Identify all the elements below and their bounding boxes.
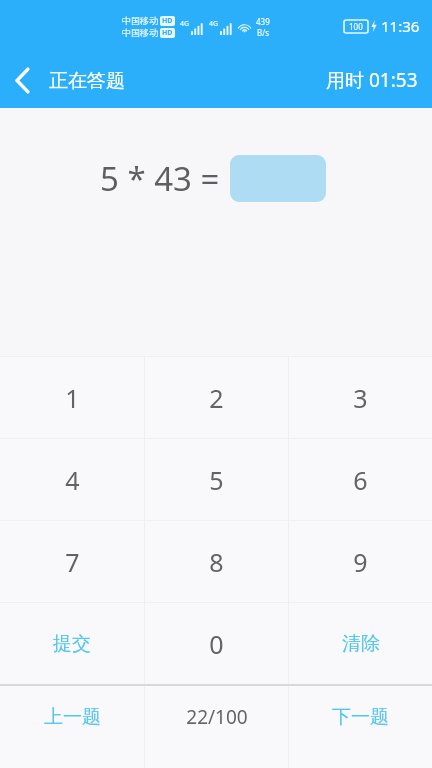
- staticText: 8: [209, 545, 224, 579]
- button[interactable]: 1: [0, 357, 144, 438]
- staticText: 22/100: [186, 704, 248, 730]
- button[interactable]: 下一题: [289, 686, 432, 768]
- button[interactable]: 清除: [289, 603, 432, 684]
- button[interactable]: 3: [289, 357, 432, 438]
- staticText: 提交: [53, 632, 91, 656]
- other: Back: [14, 67, 31, 94]
- staticText: 6: [353, 463, 368, 497]
- staticText: 清除: [342, 632, 380, 656]
- staticText: HD: [162, 16, 173, 26]
- staticText: 4G: [180, 19, 190, 29]
- button[interactable]: 4: [0, 439, 144, 520]
- staticText: B/s: [257, 27, 270, 38]
- button[interactable]: 6: [289, 439, 432, 520]
- button[interactable]: 2: [145, 357, 288, 438]
- button[interactable]: 5: [145, 439, 288, 520]
- staticText: 4G: [209, 19, 219, 29]
- staticText: 11:36: [381, 16, 420, 36]
- button[interactable]: 提交: [0, 603, 144, 684]
- staticText: 9: [353, 545, 368, 579]
- staticText: 用时 01:53: [326, 67, 418, 93]
- staticText: 上一题: [44, 705, 101, 729]
- button[interactable]: 9: [289, 521, 432, 602]
- staticText: 4: [65, 463, 80, 497]
- staticText: 100: [349, 21, 363, 32]
- staticText: 439: [256, 16, 270, 27]
- staticText: 3: [353, 381, 368, 415]
- staticText: 中国移动: [122, 27, 158, 38]
- button[interactable]: Back: [0, 59, 137, 102]
- staticText: 2: [209, 381, 224, 415]
- staticText: 正在答题: [49, 69, 125, 93]
- staticText: 1: [65, 381, 80, 415]
- staticText: 下一题: [332, 705, 389, 729]
- staticText: 0: [209, 627, 224, 661]
- button[interactable]: 0: [145, 603, 288, 684]
- button[interactable]: 22/100: [145, 686, 288, 768]
- button[interactable]: Answer input: [230, 155, 326, 202]
- button[interactable]: 7: [0, 521, 144, 602]
- staticText: 5: [209, 463, 224, 497]
- staticText: 7: [65, 545, 80, 579]
- staticText: 5 * 43 =: [100, 156, 220, 201]
- staticText: 中国移动: [122, 15, 158, 26]
- button[interactable]: 8: [145, 521, 288, 602]
- staticText: HD: [162, 28, 173, 38]
- button[interactable]: 上一题: [0, 686, 144, 768]
